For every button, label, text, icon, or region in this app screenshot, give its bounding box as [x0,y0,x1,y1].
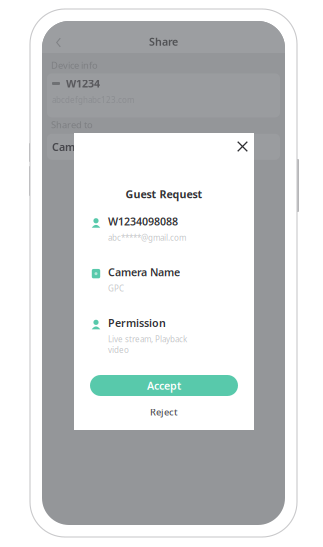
staticText: Share [149,34,178,49]
staticText: Live stream, Playback video [108,334,187,355]
staticText: GPC [108,283,124,294]
button[interactable]: Back [50,31,67,53]
staticText: Accept [147,378,181,393]
staticText: W1234 [66,76,100,91]
button[interactable]: Close [234,138,251,155]
staticText: abcdefghabc123.com [52,95,134,105]
button[interactable]: Accept [90,375,238,396]
staticText: Camera Name [108,265,180,279]
staticText: Guest Request [125,187,202,201]
staticText: Permission [108,316,166,330]
staticText: W1234098088 [108,214,178,228]
staticText: Device info [51,59,98,71]
button[interactable]: Reject [74,401,254,423]
button[interactable]: Camera [42,134,285,160]
staticText: Reject [150,406,178,418]
staticText: Shared to [51,118,93,131]
staticText: Camera [52,140,91,154]
staticText: abc*****@gmail.com [108,232,186,243]
